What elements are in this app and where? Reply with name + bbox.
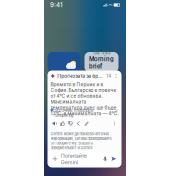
- staticText: Времето в Перник и в София. Българско е …: [50, 81, 118, 116]
- staticText: Попитайте Gemini: [61, 152, 87, 165]
- button[interactable]: More options: [110, 119, 118, 127]
- button[interactable]: Share: [74, 119, 82, 127]
- button[interactable]: Weather suggestion: [47, 52, 80, 72]
- button[interactable]: Ask Gemini: [49, 152, 120, 165]
- staticText: Morning brief: [89, 56, 114, 70]
- button[interactable]: Bad response: [66, 119, 74, 127]
- button[interactable]: Read aloud: [50, 119, 58, 127]
- staticText: Прогнозата за времето…: [57, 73, 102, 79]
- button[interactable]: Your daily: [84, 52, 118, 72]
- button[interactable]: Good response: [58, 119, 66, 127]
- staticText: Източник: meteo.bg и sinoptik.bg: [55, 108, 93, 118]
- staticText: Your daily: [92, 50, 110, 55]
- staticText: 14: [106, 73, 111, 79]
- button[interactable]: Modify: [82, 119, 90, 127]
- staticText: Gemini може да показва неточна информаци…: [50, 131, 111, 150]
- staticText: 9:41: [50, 1, 63, 9]
